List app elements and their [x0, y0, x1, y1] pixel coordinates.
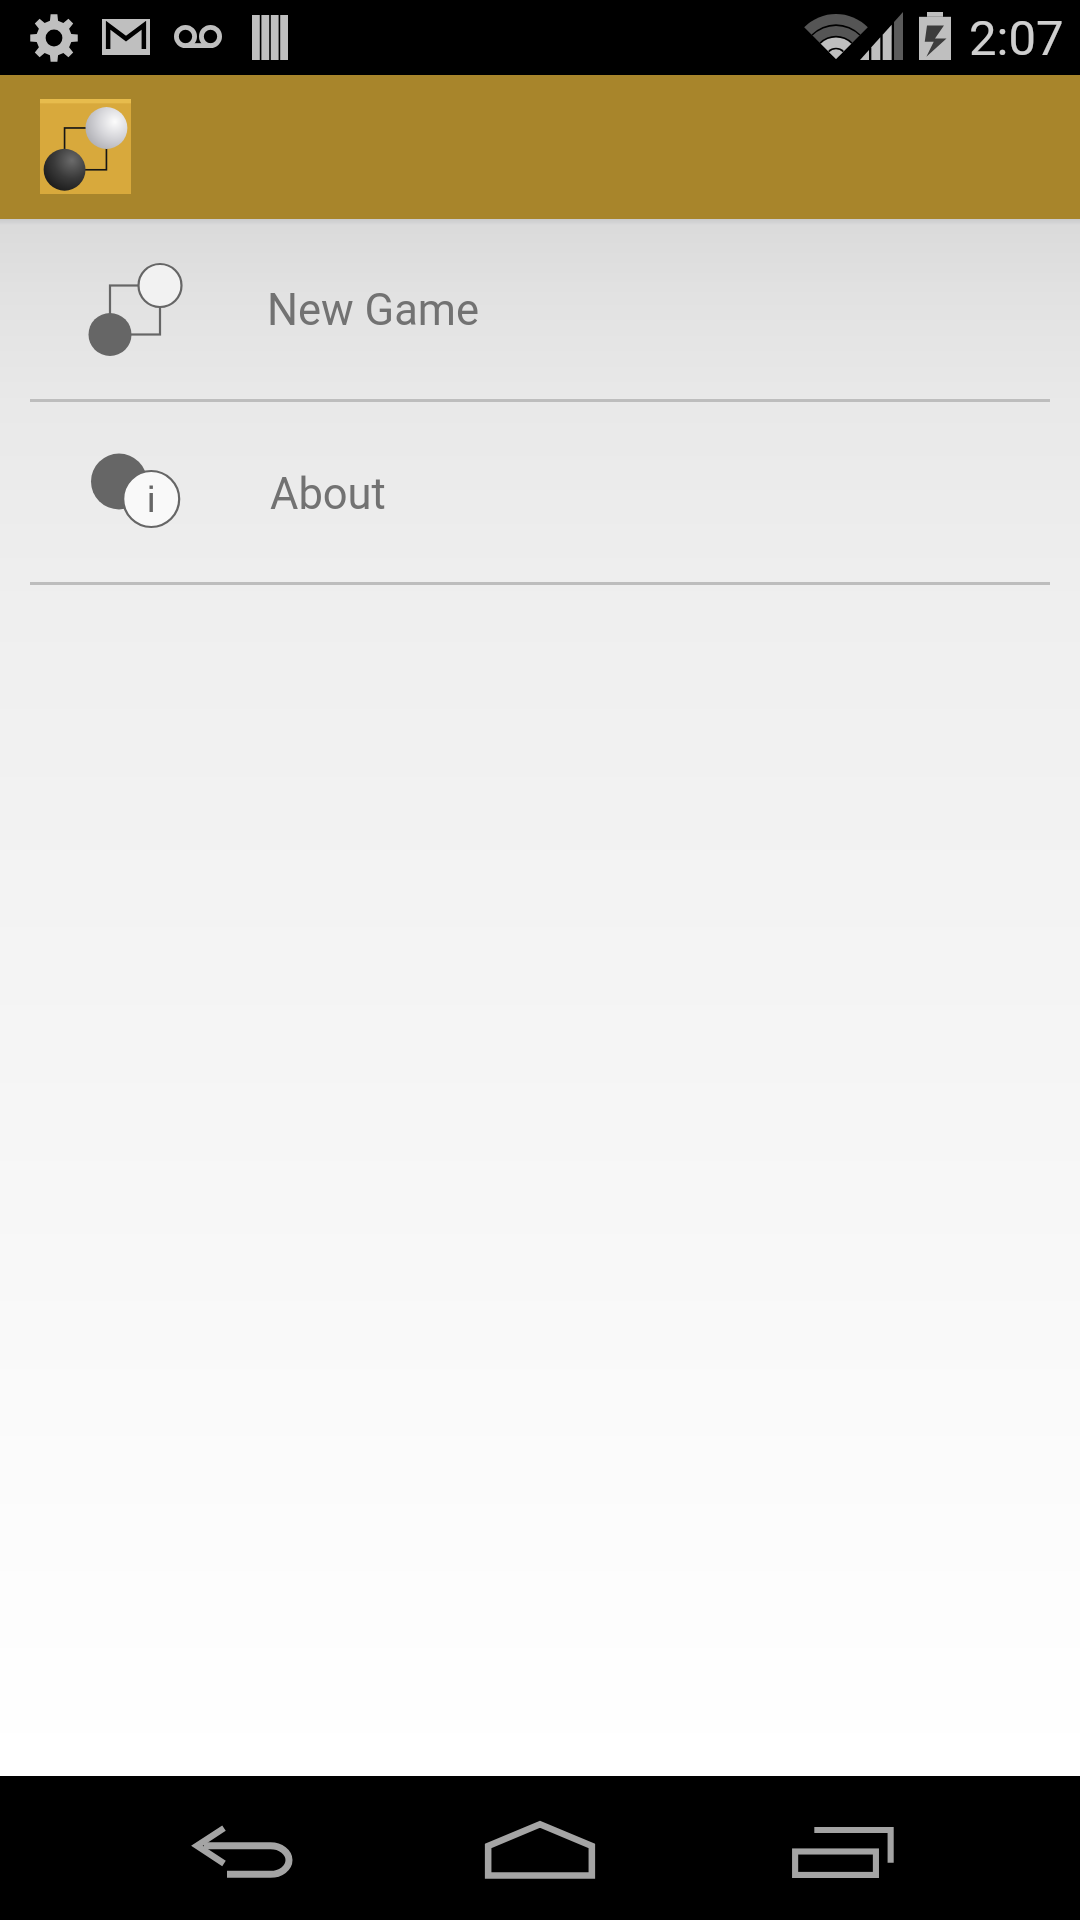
button[interactable]: Back: [170, 1776, 310, 1920]
button[interactable]: Home: [470, 1776, 610, 1920]
button[interactable]: App icon, open navigation: [40, 99, 131, 194]
button[interactable]: Recent apps: [773, 1776, 913, 1920]
staticText: 2:07: [969, 10, 1064, 67]
staticText: New Game: [267, 285, 480, 336]
button[interactable]: About: [0, 402, 1080, 582]
button[interactable]: New Game: [0, 219, 1080, 399]
staticText: About: [270, 469, 386, 520]
